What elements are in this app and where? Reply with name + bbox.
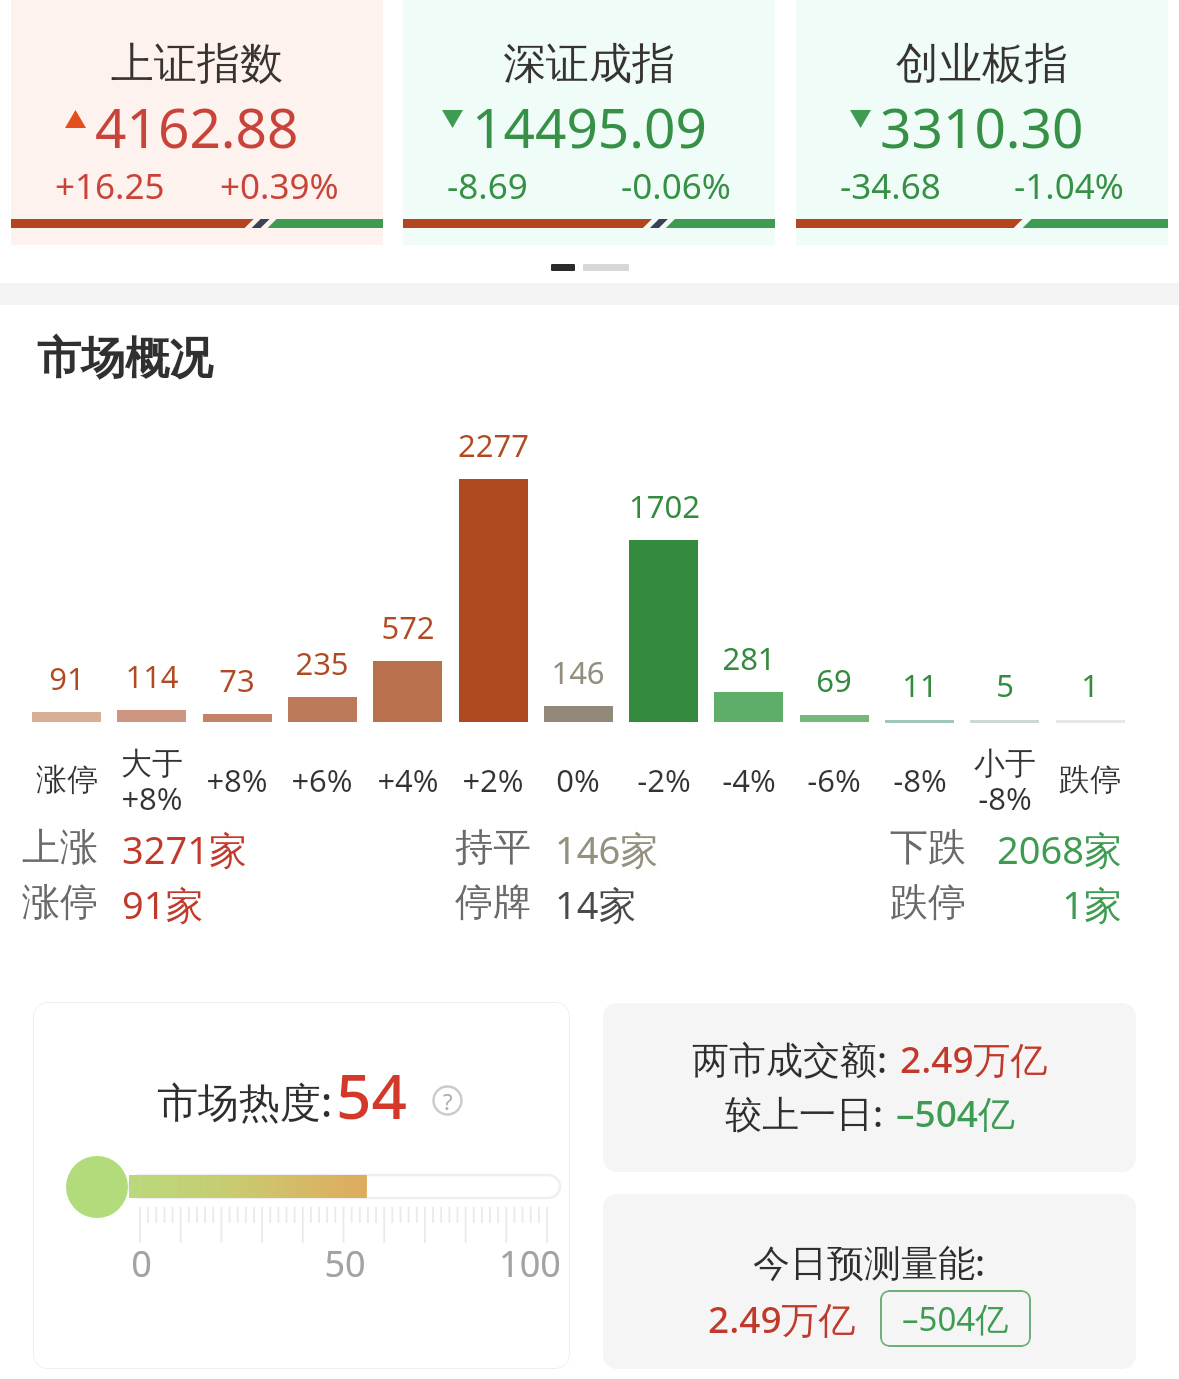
staticText: 69 [816,659,852,701]
staticText: 2277 [458,424,529,466]
staticText: 跌停 [890,878,966,926]
staticText: 2.49万亿 [900,1033,1048,1084]
staticText: 14家 [555,878,637,930]
staticText: 0 [131,1239,152,1288]
staticText: 281 [722,637,776,679]
staticText: 上证指数 [111,37,283,91]
staticText: 146 [551,651,605,693]
staticText: -8% [978,777,1032,819]
button[interactable]: 两市成交额: [603,1003,1136,1172]
staticText: -34.68 [840,162,941,204]
staticText: 跌停 [1059,760,1121,799]
staticText: 100 [499,1239,561,1288]
staticText: +6% [291,759,353,801]
staticText: 2068家 [822,823,1122,875]
staticText: ? [443,1086,453,1116]
staticText: 1家 [822,878,1122,930]
staticText: 下跌 [890,823,966,871]
staticText: -0.06% [621,162,731,204]
staticText: -1.04% [1014,162,1124,204]
staticText: 0% [556,759,600,801]
staticText: 235 [295,642,349,684]
staticText: 持平 [455,823,531,871]
staticText: +0.39% [220,162,339,204]
staticText: +4% [377,759,439,801]
staticText: -8.69 [447,162,528,204]
button[interactable]: 今日预测量能: [603,1194,1136,1369]
staticText: –504亿 [896,1087,1015,1138]
staticText: 停牌 [455,878,531,926]
staticText: 1702 [629,485,700,527]
staticText: +16.25 [55,162,165,204]
staticText: 涨停 [22,878,98,926]
staticText: 114 [125,655,179,697]
staticText: 1 [1081,664,1099,706]
staticText: -4% [722,759,776,801]
staticText: 572 [381,606,435,648]
staticText: 91 [49,657,85,699]
staticText: 146家 [555,823,659,875]
staticText: 4162.88 [95,89,299,149]
button[interactable]: 上证指数 [11,0,383,245]
staticText: 两市成交额: [692,1033,888,1084]
button[interactable] [551,264,575,271]
staticText: 较上一日: [725,1087,884,1138]
staticText: 3310.30 [880,89,1084,149]
staticText: 市场概况 [37,331,213,386]
staticText: 小于 [974,744,1036,783]
staticText: 深证成指 [503,37,675,91]
staticText: 3271家 [122,823,247,875]
staticText: 73 [219,659,255,701]
staticText: -6% [807,759,861,801]
staticText: 50 [324,1239,366,1288]
staticText: 今日预测量能: [753,1236,986,1287]
staticText: +8% [206,759,268,801]
staticText: 涨停 [36,760,98,799]
staticText: 91家 [122,878,204,930]
staticText: -8% [893,759,947,801]
staticText: 2.49万亿 [708,1293,856,1344]
button[interactable]: 市场热度: [33,1002,570,1369]
button[interactable]: 创业板指 [796,0,1168,245]
staticText: +8% [121,777,183,819]
staticText: 14495.09 [472,89,707,149]
staticText: 上涨 [22,823,98,871]
staticText: +2% [462,759,524,801]
staticText: 市场热度: [157,1073,333,1129]
staticText: 创业板指 [896,37,1068,91]
staticText: 大于 [121,744,183,783]
staticText: 11 [902,664,938,706]
button[interactable]: 深证成指 [403,0,775,245]
staticText: –504亿 [902,1296,1009,1341]
staticText: 54 [336,1053,407,1137]
staticText: -2% [637,759,691,801]
staticText: 5 [996,664,1014,706]
